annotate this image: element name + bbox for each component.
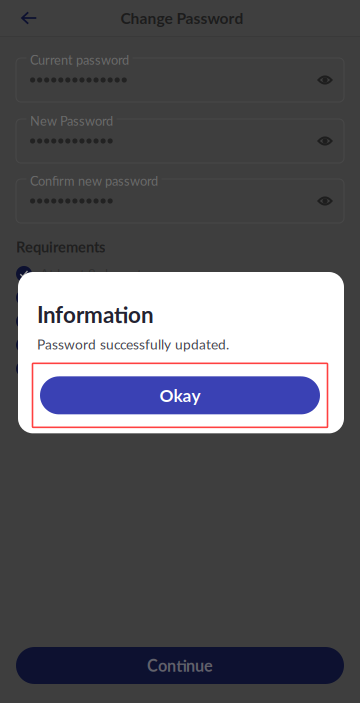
button[interactable]: Back (11, 0, 47, 36)
button[interactable]: Show Current password (308, 60, 342, 100)
staticText: At least 1 lowercase letter (40, 313, 191, 329)
button[interactable]: Continue (16, 647, 344, 684)
staticText: Information (37, 301, 154, 328)
staticText: At least 1 number (40, 337, 143, 353)
staticText: Confirm new password (30, 173, 158, 188)
staticText: Change Password (120, 9, 243, 27)
staticText: Requirements (16, 238, 105, 256)
staticText: At least 1 special character (40, 361, 196, 377)
staticText: Okay (159, 385, 200, 406)
staticText: New Password (30, 113, 113, 128)
staticText: Current password (30, 52, 129, 67)
button[interactable]: Okay (40, 376, 320, 414)
button[interactable]: Show Confirm new password (308, 181, 342, 221)
staticText: Password successfully updated. (37, 336, 229, 352)
button[interactable]: Show New Password (308, 121, 342, 161)
staticText: Continue (147, 656, 213, 675)
staticText: At least 8 characters (40, 266, 160, 282)
